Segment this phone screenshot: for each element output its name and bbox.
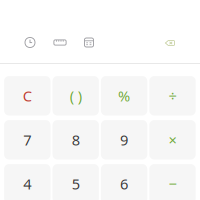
- button[interactable]: ×: [149, 120, 196, 160]
- button[interactable]: 6: [101, 164, 147, 200]
- staticText: 4: [23, 174, 31, 194]
- staticText: ( ): [70, 86, 82, 106]
- staticText: 9: [120, 130, 128, 150]
- button[interactable]: Calculator: [81, 34, 97, 50]
- staticText: ÷: [168, 86, 176, 106]
- button[interactable]: 4: [4, 164, 50, 200]
- staticText: %: [118, 86, 130, 106]
- button[interactable]: Delete: [162, 35, 178, 51]
- staticText: 5: [72, 174, 80, 194]
- button[interactable]: %: [101, 76, 147, 115]
- button[interactable]: Recents: [22, 34, 38, 50]
- button[interactable]: −: [149, 164, 196, 200]
- button[interactable]: Keyboard: [52, 34, 68, 50]
- staticText: ×: [168, 130, 176, 150]
- button[interactable]: ( ): [52, 76, 99, 115]
- staticText: −: [168, 174, 176, 194]
- staticText: 8: [72, 130, 80, 150]
- staticText: C: [23, 86, 32, 106]
- button[interactable]: 7: [4, 120, 50, 160]
- button[interactable]: ÷: [149, 76, 196, 115]
- button[interactable]: 9: [101, 120, 147, 160]
- staticText: 7: [23, 130, 31, 150]
- button[interactable]: 5: [52, 164, 99, 200]
- button[interactable]: 8: [52, 120, 99, 160]
- button[interactable]: C: [4, 76, 50, 115]
- staticText: 6: [120, 174, 128, 194]
